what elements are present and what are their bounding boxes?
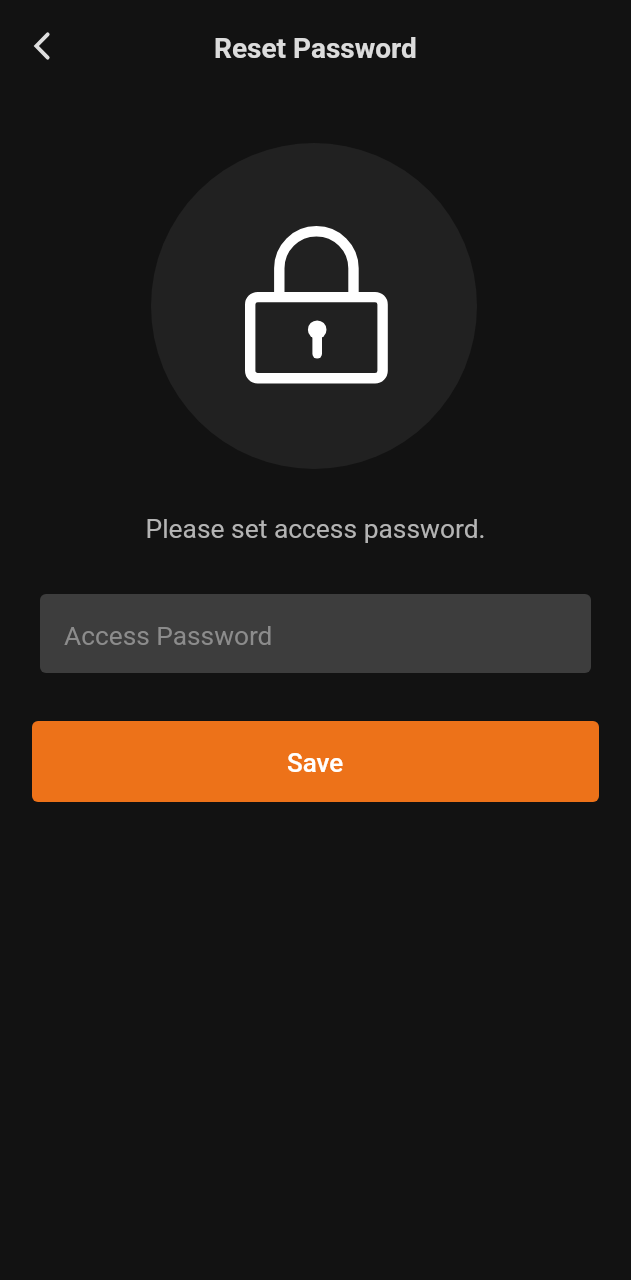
staticText: Please set access password. [0, 514, 631, 545]
staticText: Reset Password [214, 32, 417, 65]
staticText: Save [287, 748, 344, 778]
button[interactable]: Back [14, 18, 70, 74]
staticText: Access Password [64, 621, 273, 652]
button[interactable]: Access Password [40, 594, 591, 673]
button[interactable]: Save [32, 721, 599, 802]
